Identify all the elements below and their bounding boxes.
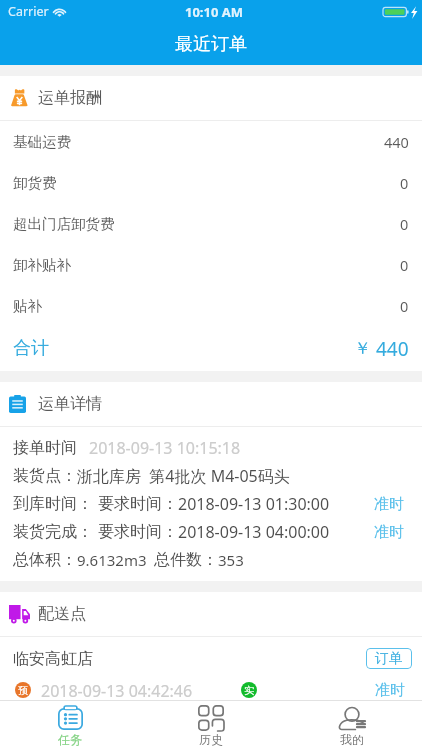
- staticText: 准时: [374, 523, 404, 542]
- staticText: 10:10 AM: [185, 3, 244, 21]
- staticText: 贴补: [13, 297, 42, 315]
- staticText: 接单时间: [13, 438, 77, 458]
- staticText: 9.6132m3: [77, 550, 147, 570]
- staticText: 实: [244, 684, 254, 697]
- staticText: 装货点：: [13, 466, 77, 486]
- button[interactable]: 超出门店卸货费: [0, 203, 422, 244]
- staticText: 装货完成：: [13, 522, 93, 542]
- staticText: 0: [400, 173, 409, 193]
- staticText: 卸货费: [13, 174, 57, 192]
- staticText: 0: [400, 214, 409, 234]
- button[interactable]: 贴补: [0, 285, 422, 326]
- staticText: 要求时间：: [98, 522, 178, 542]
- staticText: 最近订单: [175, 33, 247, 56]
- button[interactable]: 基础运费: [0, 121, 422, 162]
- button[interactable]: 临安高虹店: [0, 637, 422, 700]
- staticText: 配送点: [38, 604, 86, 624]
- button[interactable]: 卸货费: [0, 162, 422, 203]
- staticText: 任务: [58, 732, 82, 747]
- staticText: 准时: [374, 495, 404, 514]
- staticText: 运单报酬: [38, 88, 102, 108]
- staticText: 总件数：: [154, 550, 218, 570]
- staticText: 准时: [375, 681, 405, 700]
- staticText: 预: [18, 684, 28, 697]
- staticText: 我的: [340, 732, 364, 747]
- button[interactable]: 卸补贴补: [0, 244, 422, 285]
- staticText: 353: [218, 550, 244, 570]
- button[interactable]: 订单: [366, 648, 412, 669]
- staticText: 总体积：: [13, 550, 77, 570]
- staticText: ￥: [354, 338, 371, 359]
- staticText: 0: [400, 296, 409, 316]
- staticText: Carrier: [8, 3, 49, 20]
- staticText: 2018-09-13 01:30:00: [178, 493, 330, 515]
- staticText: 临安高虹店: [13, 649, 93, 669]
- staticText: 订单: [375, 650, 403, 668]
- staticText: 超出门店卸货费: [13, 215, 115, 233]
- staticText: 2018-09-13 10:15:18: [89, 437, 241, 459]
- staticText: 2018-09-13 04:00:00: [178, 521, 330, 543]
- button[interactable]: 历史: [140, 701, 281, 750]
- staticText: 运单详情: [38, 394, 102, 414]
- staticText: 基础运费: [13, 133, 71, 151]
- staticText: 浙北库房 第4批次 M4-05码头: [77, 465, 290, 487]
- button[interactable]: 任务: [0, 701, 140, 750]
- staticText: 历史: [199, 732, 223, 747]
- staticText: 合计: [13, 337, 49, 360]
- staticText: 到库时间：: [13, 494, 93, 514]
- staticText: 440: [376, 336, 409, 362]
- staticText: 0: [400, 255, 409, 275]
- staticText: 要求时间：: [98, 494, 178, 514]
- button[interactable]: 我的: [281, 701, 422, 750]
- staticText: 440: [384, 132, 409, 152]
- staticText: 2018-09-13 04:42:46: [41, 680, 193, 700]
- staticText: 卸补贴补: [13, 256, 71, 274]
